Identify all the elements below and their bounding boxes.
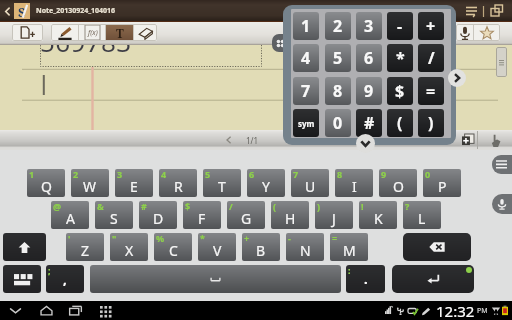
button[interactable]: 2: [325, 12, 351, 40]
button[interactable]: List menu: [461, 0, 481, 22]
button[interactable]: -: [387, 12, 413, 40]
button[interactable]: E: [115, 169, 153, 197]
button[interactable]: 0: [325, 109, 351, 137]
staticText: Y: [262, 177, 270, 196]
button[interactable]: Period: [346, 265, 385, 293]
button[interactable]: Eraser: [134, 24, 157, 41]
button[interactable]: Backspace: [403, 233, 471, 261]
button[interactable]: H: [271, 201, 309, 229]
button[interactable]: V: [198, 233, 236, 261]
staticText: N: [300, 241, 311, 260]
button[interactable]: Voice: [456, 24, 473, 41]
button[interactable]: *: [387, 44, 413, 72]
button[interactable]: C: [154, 233, 192, 261]
button[interactable]: +: [418, 12, 444, 40]
staticText: 2: [333, 15, 343, 37]
button[interactable]: Pen: [51, 24, 78, 41]
staticText: O: [393, 177, 404, 196]
button[interactable]: 5: [325, 44, 351, 72]
button[interactable]: S: [95, 201, 133, 229]
button[interactable]: Formula: [79, 24, 105, 41]
staticText: 4: [161, 169, 167, 180]
button[interactable]: #: [356, 109, 382, 137]
button[interactable]: L: [403, 201, 441, 229]
staticText: *: [200, 233, 205, 244]
button[interactable]: J: [315, 201, 353, 229]
button[interactable]: W: [71, 169, 109, 197]
button[interactable]: 4: [293, 44, 319, 72]
button[interactable]: U: [291, 169, 329, 197]
button[interactable]: A: [51, 201, 89, 229]
button[interactable]: Space: [90, 265, 341, 293]
staticText: 7: [301, 80, 311, 102]
staticText: 1: [301, 15, 311, 37]
button[interactable]: Favorite: [474, 24, 500, 41]
button[interactable]: 1: [293, 12, 319, 40]
button[interactable]: Text: [106, 24, 133, 41]
button[interactable]: Multi window: [486, 0, 508, 22]
button[interactable]: D: [139, 201, 177, 229]
staticText: P: [438, 177, 447, 196]
button[interactable]: T: [203, 169, 241, 197]
button[interactable]: 3: [356, 12, 382, 40]
button[interactable]: Add page: [12, 24, 43, 41]
button[interactable]: 7: [293, 77, 319, 105]
button[interactable]: Apps: [95, 301, 117, 320]
staticText: K: [374, 209, 383, 228]
button[interactable]: I: [335, 169, 373, 197]
button[interactable]: R: [159, 169, 197, 197]
button[interactable]: F: [183, 201, 221, 229]
button[interactable]: M: [330, 233, 368, 261]
button[interactable]: 8: [325, 77, 351, 105]
button[interactable]: Enter: [392, 265, 474, 293]
button[interactable]: (: [387, 109, 413, 137]
button[interactable]: B: [242, 233, 280, 261]
button[interactable]: G: [227, 201, 265, 229]
button[interactable]: Shift: [3, 233, 46, 261]
button[interactable]: sym: [293, 109, 319, 137]
button[interactable]: O: [379, 169, 417, 197]
button[interactable]: Q: [27, 169, 65, 197]
staticText: =: [332, 233, 338, 244]
staticText: (: [397, 112, 403, 134]
button[interactable]: Move keypad: [272, 34, 288, 52]
button[interactable]: Keyboard options: [492, 155, 512, 174]
button[interactable]: Hand tool: [478, 130, 512, 150]
staticText: S: [110, 209, 118, 228]
button[interactable]: K: [359, 201, 397, 229]
button[interactable]: $: [387, 77, 413, 105]
button[interactable]: 9: [356, 77, 382, 105]
staticText: +: [426, 15, 436, 37]
button[interactable]: Back: [0, 0, 14, 22]
staticText: H: [285, 209, 296, 228]
button[interactable]: Previous page: [222, 133, 236, 147]
staticText: 9: [381, 169, 387, 180]
staticText: (: [273, 201, 277, 212]
button[interactable]: Recents: [64, 301, 86, 320]
staticText: 8: [333, 80, 343, 102]
button[interactable]: 6: [356, 44, 382, 72]
staticText: 6: [249, 169, 255, 180]
staticText: sym: [298, 118, 315, 129]
button[interactable]: P: [423, 169, 461, 197]
button[interactable]: Back: [4, 301, 26, 320]
button[interactable]: /: [418, 44, 444, 72]
button[interactable]: Y: [247, 169, 285, 197]
button[interactable]: Voice input: [492, 194, 512, 214]
staticText: +: [244, 233, 250, 244]
staticText: %: [156, 233, 165, 244]
staticText: C: [169, 241, 178, 260]
button[interactable]: N: [286, 233, 324, 261]
button[interactable]: X: [110, 233, 148, 261]
button[interactable]: Add page: [459, 131, 477, 149]
button[interactable]: Switch keyboard: [3, 265, 41, 293]
button[interactable]: Home: [35, 301, 57, 320]
button[interactable]: Hide keypad: [356, 134, 375, 153]
staticText: Z: [81, 241, 90, 260]
button[interactable]: =: [418, 77, 444, 105]
button[interactable]: Expand keypad: [448, 69, 466, 87]
button[interactable]: Z: [66, 233, 104, 261]
staticText: :: [348, 265, 351, 276]
button[interactable]: Comma: [46, 265, 84, 293]
button[interactable]: ): [418, 109, 444, 137]
